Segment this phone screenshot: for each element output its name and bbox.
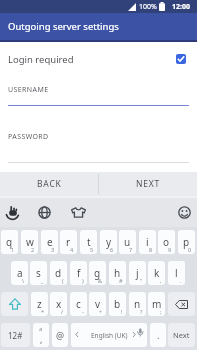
staticText: 6 [110, 246, 114, 253]
button[interactable]: NEXT [99, 172, 197, 196]
button[interactable]: Login required [0, 48, 197, 70]
staticText: 5 [90, 246, 94, 253]
staticText: * [41, 308, 45, 315]
staticText: c [76, 297, 81, 311]
button[interactable]: y [100, 230, 117, 254]
button[interactable]: d [50, 261, 67, 285]
staticText: . [157, 329, 160, 341]
button[interactable]: c [70, 292, 87, 316]
staticText: 12:00 [172, 2, 190, 12]
staticText: ; [160, 308, 162, 315]
button[interactable]: n [129, 292, 146, 316]
staticText: h [114, 266, 121, 280]
button[interactable]: u [119, 230, 136, 254]
button[interactable]: q [1, 230, 18, 254]
button[interactable]: Next [168, 323, 195, 347]
button[interactable]: a [11, 261, 28, 285]
button[interactable]: . [150, 323, 166, 347]
staticText: z [37, 297, 42, 311]
staticText: u [124, 235, 131, 249]
button[interactable]: o [158, 230, 175, 254]
staticText: English (UK) [91, 331, 128, 340]
button[interactable]: f [70, 261, 87, 285]
staticText: 7 [129, 246, 133, 253]
staticText: w [26, 235, 34, 249]
staticText: _ [41, 277, 44, 284]
button[interactable]: x [50, 292, 67, 316]
staticText: ) [82, 277, 84, 284]
button[interactable]: English (UK) [71, 323, 147, 347]
staticText: o [163, 235, 170, 249]
staticText: . [180, 277, 182, 284]
staticText: j [136, 266, 139, 280]
staticText: USERNAME [8, 85, 49, 95]
staticText: d [55, 266, 62, 280]
staticText: y [106, 235, 112, 249]
staticText: PASSWORD [8, 132, 49, 142]
staticText: l [175, 266, 178, 280]
staticText: 1 [11, 246, 15, 253]
staticText: 2 [31, 246, 35, 253]
staticText: ? [140, 308, 143, 315]
staticText: n [134, 297, 141, 311]
button[interactable]: i [139, 230, 156, 254]
button[interactable]: m [148, 292, 165, 316]
staticText: f [77, 266, 81, 280]
button[interactable] [1, 292, 28, 316]
staticText: q [6, 235, 13, 249]
staticText: Outgoing server settings [8, 20, 119, 33]
staticText: ! [121, 308, 123, 315]
staticText: e [47, 235, 53, 249]
button[interactable] [5, 205, 21, 222]
button[interactable]: e [41, 230, 58, 254]
button[interactable]: a [33, 323, 49, 347]
staticText: 4 [70, 246, 74, 253]
staticText: " [140, 277, 143, 284]
staticText: v [95, 297, 101, 311]
staticText: a [39, 325, 43, 333]
staticText: BACK [37, 178, 62, 190]
staticText: 9 [168, 246, 172, 253]
staticText: NEXT [136, 178, 161, 190]
staticText: @ [56, 329, 65, 341]
staticText: & [98, 277, 103, 284]
staticText: 3 [51, 246, 55, 253]
staticText: s [36, 266, 41, 280]
button[interactable]: v [89, 292, 106, 316]
staticText: 100% [139, 2, 157, 12]
staticText: \ [22, 277, 25, 284]
staticText: 12# [8, 330, 23, 341]
button[interactable]: j [129, 261, 146, 285]
button[interactable]: k [148, 261, 165, 285]
button[interactable]: b [109, 292, 126, 316]
staticText: + [99, 308, 103, 315]
button[interactable]: @ [52, 323, 68, 347]
button[interactable]: BACK [0, 172, 98, 196]
staticText: # [119, 277, 123, 284]
staticText: Login required [8, 53, 74, 66]
button[interactable]: l [168, 261, 185, 285]
staticText: , [40, 333, 43, 345]
button[interactable]: t [80, 230, 97, 254]
staticText: x [56, 297, 62, 311]
button[interactable]: r [60, 230, 77, 254]
button[interactable]: 12# [1, 323, 30, 347]
button[interactable] [71, 205, 86, 220]
staticText: g [94, 266, 101, 280]
staticText: - [82, 308, 84, 315]
button[interactable]: s [30, 261, 47, 285]
button[interactable] [177, 205, 192, 220]
button[interactable]: p [178, 230, 195, 254]
button[interactable]: h [109, 261, 126, 285]
staticText: r [66, 235, 71, 249]
staticText: ( [62, 277, 64, 284]
button[interactable]: z [31, 292, 48, 316]
staticText: Next [173, 330, 190, 340]
button[interactable] [168, 292, 195, 316]
button[interactable]: w [21, 230, 38, 254]
staticText: 0 [188, 246, 192, 253]
button[interactable]: g [89, 261, 106, 285]
button[interactable] [37, 205, 52, 220]
staticText: i [146, 235, 149, 249]
staticText: / [61, 308, 64, 315]
